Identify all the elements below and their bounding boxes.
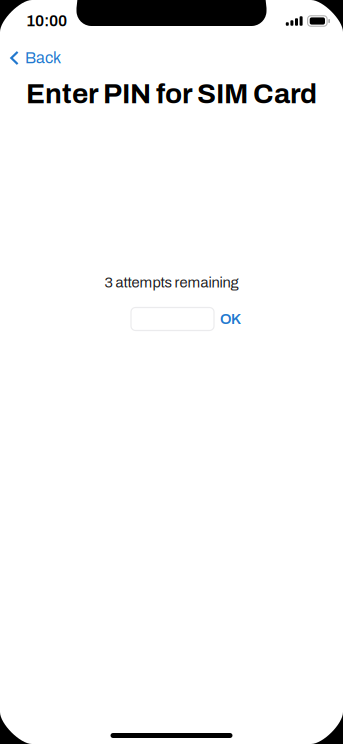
staticText: OK	[220, 311, 241, 327]
staticText: 10:00	[26, 12, 67, 30]
staticText: Enter PIN for SIM Card	[26, 79, 317, 109]
staticText: Back	[25, 49, 61, 67]
button[interactable]: OK	[216, 307, 245, 331]
button[interactable]: Back	[0, 47, 92, 69]
staticText: 3 attempts remaining	[104, 274, 238, 290]
